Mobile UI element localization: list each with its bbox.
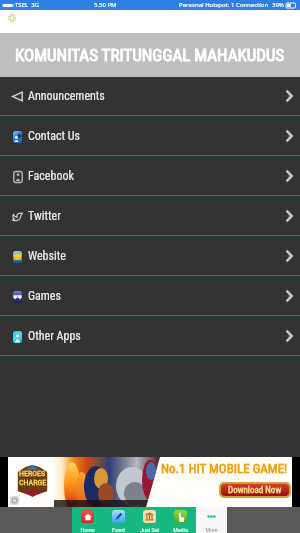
staticText: Facebook [28, 169, 74, 183]
staticText: Jual Sel [140, 526, 159, 533]
button[interactable]: Other Apps [0, 317, 300, 355]
staticText: Website [28, 249, 66, 263]
staticText: CHARGE [19, 478, 47, 487]
button[interactable]: Twitter [0, 197, 300, 235]
button[interactable]: Event [103, 507, 134, 533]
staticText: Announcements [28, 89, 105, 103]
button[interactable]: Jual Sel [134, 507, 165, 533]
staticText: TSEL 3G [15, 1, 40, 9]
staticText: Other Apps [28, 329, 81, 343]
staticText: Personal Hotspot: 1 Connection [179, 1, 269, 9]
staticText: Twitter [28, 209, 61, 223]
staticText: No.1 HIT MOBILE GAME! [161, 461, 288, 476]
staticText: Home [80, 526, 95, 533]
button[interactable]: Website [0, 237, 300, 275]
button[interactable]: Home [72, 507, 103, 533]
staticText: Event [112, 526, 125, 533]
button[interactable]: Media [165, 507, 196, 533]
other: More [205, 510, 218, 523]
staticText: KOMUNITAS TRITUNGGAL MAHAKUDUS [15, 45, 285, 65]
button[interactable]: Games [0, 277, 300, 315]
staticText: More [205, 526, 218, 533]
button[interactable]: Contact Us [0, 117, 300, 155]
staticText: Media [173, 526, 188, 533]
staticText: 5.50 PM [94, 1, 117, 9]
button[interactable]: More [196, 507, 227, 533]
button[interactable]: HEROES [8, 457, 292, 507]
staticText: 39% [272, 1, 284, 9]
staticText: HEROES [19, 469, 46, 478]
staticText: Download Now [228, 485, 282, 496]
button[interactable]: Facebook [0, 157, 300, 195]
staticText: Contact Us [28, 129, 80, 143]
button[interactable]: Announcements [0, 77, 300, 115]
staticText: Games [28, 289, 61, 303]
